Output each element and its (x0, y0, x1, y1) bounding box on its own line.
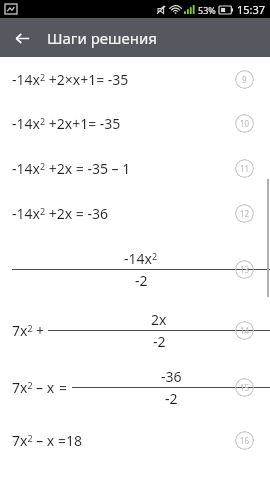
staticText: 15 (240, 382, 250, 393)
staticText: 7x2 (12, 378, 33, 397)
button[interactable]: 15 (235, 378, 254, 397)
button[interactable]: 11 (235, 159, 254, 178)
staticText: 15:37 (237, 2, 266, 17)
staticText: 9 (242, 74, 247, 85)
staticText: -14x2 +2x+1= -35 (12, 114, 121, 133)
button[interactable]: 14 (235, 321, 254, 340)
staticText: 7x2 (12, 321, 33, 340)
staticText: 12 (240, 208, 250, 219)
staticText: -2 (135, 271, 148, 290)
staticText: 10 (240, 118, 250, 129)
button[interactable]: -14x2 +2×x+1= -35 (0, 57, 270, 101)
staticText: – x (36, 378, 55, 397)
staticText: 7x2 – x =18 (12, 431, 82, 450)
button[interactable]: -14x2 +2x = -36 (0, 191, 270, 236)
button[interactable]: 13 (235, 260, 254, 279)
button[interactable]: -14x2 +2x+1= -35 (0, 101, 270, 146)
staticText: + (36, 321, 45, 340)
button[interactable]: -14x2 +2x = -35 – 1 (0, 146, 270, 191)
button[interactable]: 9 (235, 70, 254, 89)
staticText: 53% (198, 4, 216, 16)
button[interactable]: 10 (235, 114, 254, 133)
staticText: -36 (161, 367, 182, 386)
button[interactable]: Back (8, 24, 36, 52)
staticText: -2 (153, 332, 166, 351)
staticText: -14x2 (124, 249, 158, 268)
button[interactable]: 7x2 – x =18 (0, 416, 270, 464)
button[interactable]: -14x2 (0, 236, 270, 302)
staticText: -2 (165, 389, 178, 408)
button[interactable]: 7x2 (0, 359, 270, 416)
staticText: 14 (240, 325, 250, 336)
staticText: = (59, 378, 68, 397)
staticText: 13 (240, 264, 250, 275)
staticText: -14x2 +2x = -35 – 1 (12, 159, 131, 178)
staticText: 16 (240, 435, 250, 446)
staticText: 11 (240, 163, 250, 174)
button[interactable]: 12 (235, 204, 254, 223)
staticText: 2x (151, 310, 167, 329)
staticText: Шаги решения (47, 28, 157, 48)
staticText: -14x2 +2x = -36 (12, 204, 108, 223)
staticText: -14x2 +2×x+1= -35 (12, 70, 129, 89)
button[interactable]: 16 (235, 431, 254, 450)
button[interactable]: 7x2 (0, 302, 270, 359)
